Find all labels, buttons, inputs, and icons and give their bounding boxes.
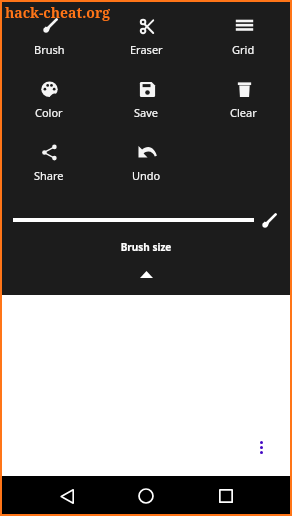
staticText: Undo xyxy=(132,168,161,183)
button[interactable]: Home xyxy=(125,476,167,516)
button[interactable]: Eraser xyxy=(98,17,195,65)
staticText: Share xyxy=(34,168,64,183)
button[interactable]: Recent apps xyxy=(205,476,247,516)
button[interactable]: Brush xyxy=(0,17,98,65)
button[interactable]: More options xyxy=(249,435,273,459)
staticText: Clear xyxy=(230,105,257,120)
button[interactable]: Save xyxy=(98,80,195,128)
staticText: hack-cheat.org xyxy=(5,3,111,22)
button[interactable]: Clear xyxy=(195,80,292,128)
button[interactable]: Grid xyxy=(195,17,292,65)
staticText: Color xyxy=(35,105,63,120)
button[interactable]: Back xyxy=(46,476,88,516)
button[interactable]: Collapse toolbar xyxy=(0,262,292,286)
staticText: Save xyxy=(134,105,159,120)
button[interactable]: Undo xyxy=(98,143,195,191)
button[interactable]: Share xyxy=(0,143,98,191)
staticText: Grid xyxy=(232,42,255,57)
button[interactable]: Color xyxy=(0,80,98,128)
staticText: Brush xyxy=(34,42,65,57)
staticText: Brush size xyxy=(0,240,292,254)
staticText: Eraser xyxy=(130,42,163,57)
